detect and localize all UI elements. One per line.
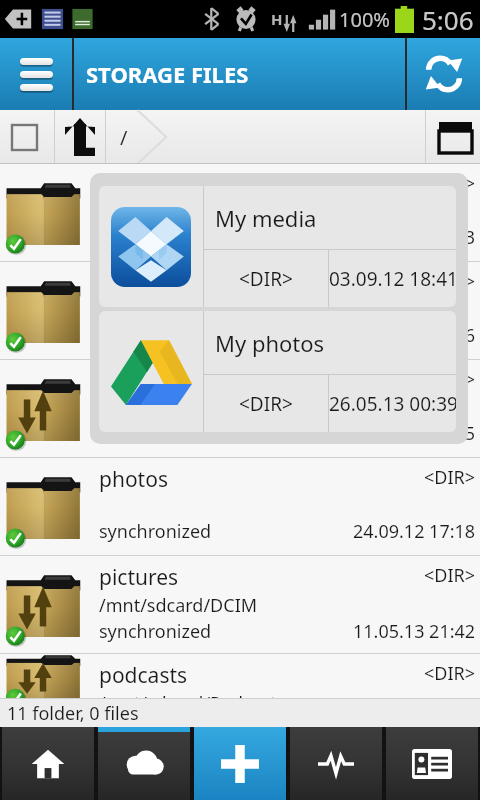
staticText: movies <box>99 269 169 298</box>
staticText: My photos <box>215 328 325 358</box>
staticText: <DIR> <box>239 266 293 292</box>
staticText: <DIR> <box>424 661 476 686</box>
staticText: synchronized <box>99 519 212 544</box>
staticText: music <box>99 171 158 200</box>
staticText: 11.05.13 21:42 <box>353 619 476 644</box>
staticText: / <box>120 124 128 151</box>
staticText: photos <box>99 465 168 494</box>
staticText: /mnt/sdcard/Podcasts <box>99 691 286 698</box>
staticText: synchronized <box>99 619 212 644</box>
button[interactable]: / <box>106 110 425 164</box>
button[interactable]: pictures <box>0 556 480 654</box>
button[interactable]: Change view <box>426 110 480 164</box>
button[interactable]: Up one level <box>55 110 105 164</box>
staticText: My media <box>215 203 317 233</box>
button[interactable]: podcasts <box>0 654 480 699</box>
staticText: synchronized <box>99 421 212 446</box>
staticText: 03.03.13 12:45 <box>353 421 476 446</box>
staticText: 26.05.13 00:39 <box>329 391 456 417</box>
button[interactable]: Contacts <box>386 727 478 800</box>
button[interactable]: Home <box>2 727 94 800</box>
staticText: podcasts <box>99 661 188 690</box>
staticText: <DIR> <box>239 391 293 417</box>
staticText: 13.05.13 12:03 <box>353 225 476 250</box>
staticText: 02.02.12 11:06 <box>353 323 476 348</box>
button[interactable]: My photos <box>99 311 456 432</box>
button[interactable]: music <box>0 164 480 262</box>
staticText: 11 folder, 0 files <box>7 701 139 726</box>
button[interactable]: My media <box>99 186 456 307</box>
staticText: STORAGE FILES <box>86 59 249 89</box>
button[interactable]: Refresh <box>407 38 480 110</box>
button[interactable]: movies <box>0 262 480 360</box>
staticText: <DIR> <box>424 367 476 392</box>
button[interactable]: Menu <box>0 38 72 110</box>
button[interactable]: Cloud <box>98 727 190 800</box>
staticText: 03.09.12 18:41 <box>329 266 456 292</box>
staticText: 5:06 <box>422 2 474 37</box>
staticText: pictures <box>99 563 179 592</box>
staticText: synchronized <box>99 323 212 348</box>
button[interactable]: photos <box>0 458 480 556</box>
staticText: /mnt/sdcard/DCIM <box>99 593 258 618</box>
staticText: 24.09.12 17:18 <box>353 519 476 544</box>
staticText: 100% <box>339 6 390 33</box>
staticText: downloads <box>99 367 207 396</box>
button[interactable]: Select all <box>0 110 54 164</box>
staticText: synchronized <box>99 225 212 250</box>
staticText: <DIR> <box>424 465 476 490</box>
button[interactable]: Add <box>194 727 286 800</box>
staticText: H <box>271 9 283 29</box>
staticText: <DIR> <box>424 171 476 196</box>
button[interactable]: Activity <box>290 727 382 800</box>
staticText: <DIR> <box>424 269 476 294</box>
staticText: <DIR> <box>424 563 476 588</box>
button[interactable]: downloads <box>0 360 480 458</box>
